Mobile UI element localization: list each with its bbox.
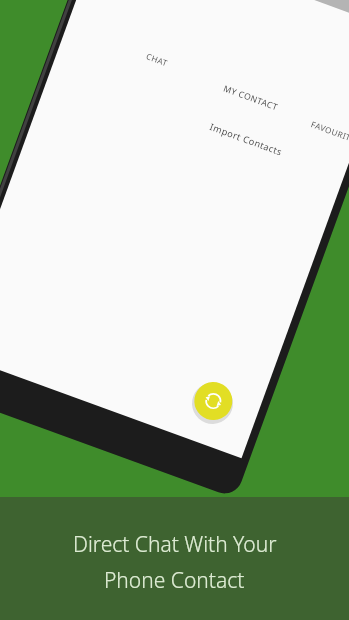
staticText: MY CONTACT — [222, 82, 280, 113]
staticText: Import Contacts — [208, 120, 285, 159]
staticText: Direct Chat With Your — [73, 530, 277, 559]
button[interactable] — [286, 108, 348, 134]
button[interactable] — [128, 40, 190, 66]
staticText: Phone Contact — [104, 566, 245, 595]
button[interactable] — [190, 74, 280, 100]
staticText: FAVOURITE — [309, 118, 349, 145]
button[interactable]: Sync contacts — [195, 429, 239, 473]
staticText: CHAT — [145, 50, 170, 69]
button[interactable] — [178, 112, 290, 140]
